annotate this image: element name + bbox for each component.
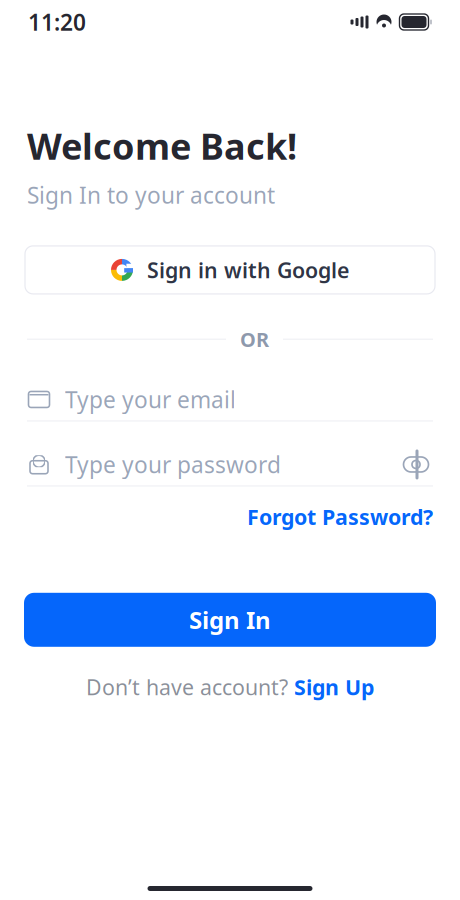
button[interactable]: Sign In: [24, 593, 436, 647]
staticText: Sign In: [189, 604, 271, 636]
staticText: Forgot Password?: [247, 502, 433, 531]
button[interactable]: Don’t have account?: [0, 673, 460, 701]
staticText: Sign Up: [294, 673, 374, 701]
staticText: 11:20: [28, 7, 86, 37]
staticText: OR: [240, 326, 269, 352]
staticText: Welcome Back!: [27, 122, 297, 170]
staticText: Don’t have account?: [86, 673, 288, 701]
button[interactable]: Sign in with Google: [25, 246, 435, 294]
staticText: Type your email: [65, 384, 236, 414]
staticText: Sign In to your account: [27, 180, 275, 210]
staticText: Type your password: [65, 449, 281, 479]
button[interactable]: Show password: [399, 450, 433, 478]
button[interactable]: Forgot Password?: [247, 502, 433, 531]
staticText: Sign in with Google: [147, 256, 349, 284]
